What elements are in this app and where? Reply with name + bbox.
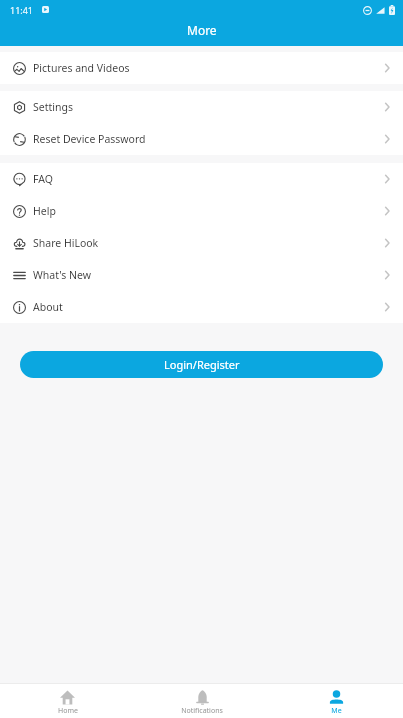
staticText: Home [58,706,78,716]
button[interactable]: Settings [0,91,403,123]
staticText: Pictures and Videos [33,61,130,75]
staticText: What's New [33,268,91,282]
button[interactable]: Notifications [135,684,269,718]
staticText: FAQ [33,172,53,186]
button[interactable]: Me [269,684,403,718]
button[interactable]: FAQ [0,163,403,195]
staticText: Settings [33,100,73,114]
button[interactable]: Help [0,195,403,227]
button[interactable]: Share HiLook [0,227,403,259]
button[interactable]: About [0,291,403,323]
staticText: Login/Register [164,357,240,372]
button[interactable]: What's New [0,259,403,291]
button[interactable]: Reset Device Password [0,123,403,155]
staticText: More [187,22,217,38]
button[interactable]: Pictures and Videos [0,52,403,84]
button[interactable]: Home [0,684,135,718]
staticText: Help [33,204,56,218]
staticText: About [33,300,63,314]
staticText: 11:41 [10,4,34,16]
button[interactable]: Login/Register [20,351,383,378]
staticText: Notifications [181,706,223,716]
staticText: Reset Device Password [33,132,146,146]
staticText: Share HiLook [33,236,99,250]
staticText: Me [331,706,342,716]
